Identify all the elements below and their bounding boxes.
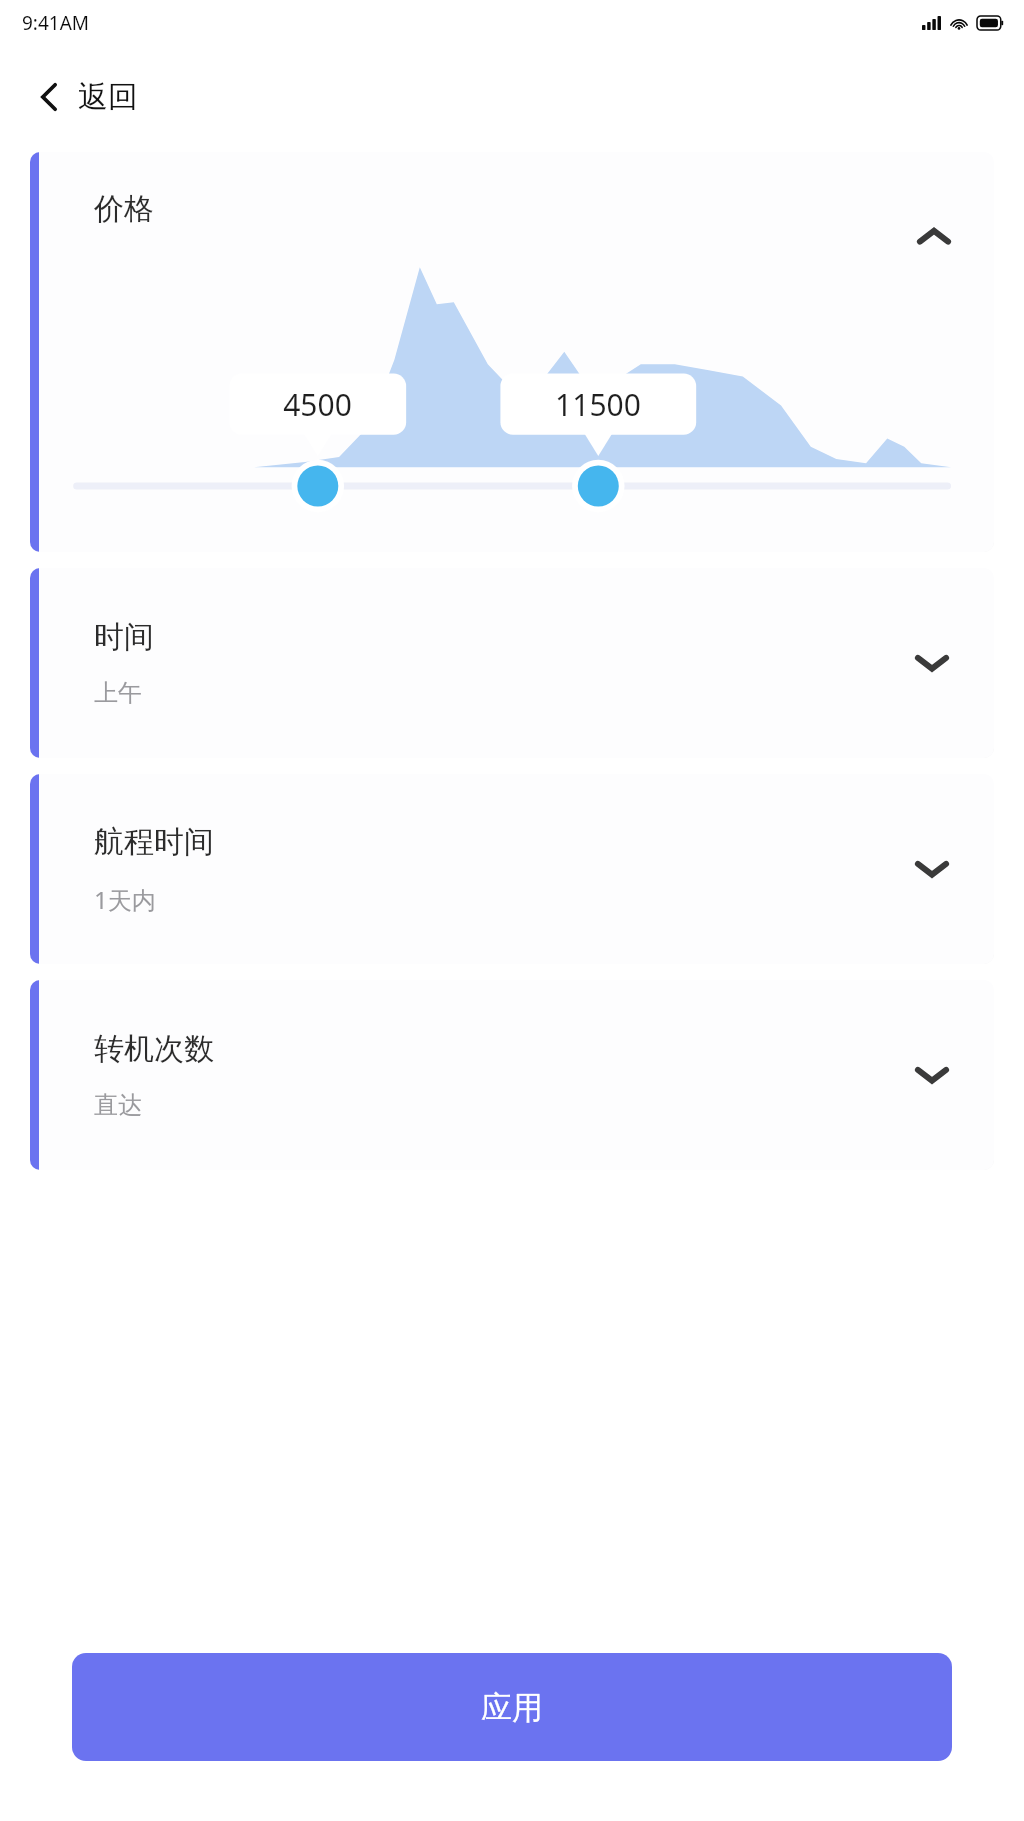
staticText: 价格 bbox=[94, 190, 154, 228]
staticText: 时间 bbox=[94, 618, 154, 656]
staticText: 返回 bbox=[78, 78, 138, 116]
staticText: 上午 bbox=[94, 678, 142, 708]
button[interactable]: Back bbox=[30, 70, 146, 124]
staticText: 直达 bbox=[94, 1090, 142, 1120]
staticText: 4500 bbox=[229, 384, 406, 425]
staticText: 航程时间 bbox=[94, 823, 214, 861]
button[interactable]: Expand 转机次数 bbox=[910, 1053, 954, 1097]
button[interactable]: 价格 bbox=[30, 152, 994, 552]
staticText: 11500 bbox=[500, 384, 696, 425]
other: Back bbox=[38, 80, 60, 114]
button[interactable]: 应用 bbox=[72, 1653, 952, 1761]
staticText: 1天内 bbox=[94, 883, 156, 916]
button[interactable]: Expand 时间 bbox=[910, 641, 954, 685]
button[interactable]: 转机次数 bbox=[30, 980, 994, 1170]
button[interactable]: Expand 航程时间 bbox=[910, 847, 954, 891]
staticText: 9:41AM bbox=[22, 10, 90, 36]
staticText: 应用 bbox=[481, 1688, 543, 1727]
button[interactable]: 时间 bbox=[30, 568, 994, 758]
button[interactable]: Collapse price bbox=[914, 216, 954, 256]
staticText: 转机次数 bbox=[94, 1030, 214, 1068]
button[interactable]: 航程时间 bbox=[30, 774, 994, 964]
